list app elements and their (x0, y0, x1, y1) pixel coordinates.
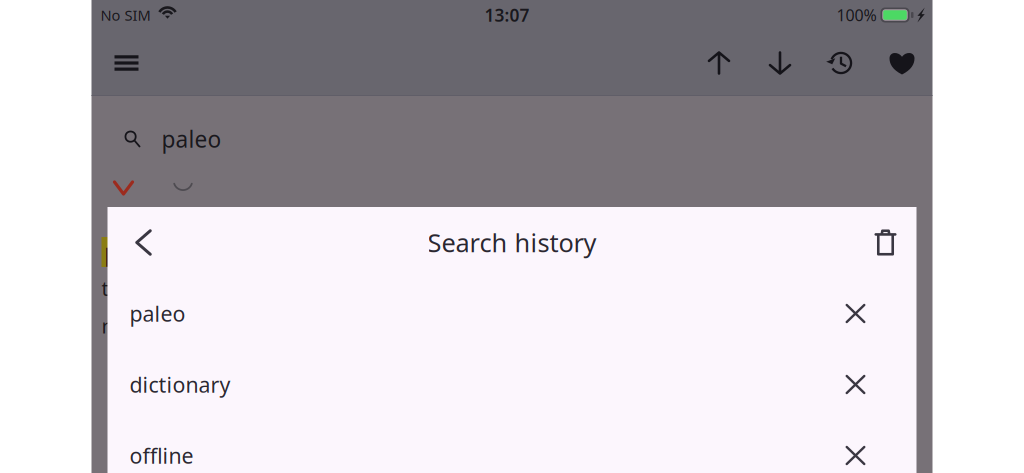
button[interactable]: Next match (749, 30, 810, 96)
staticText: 100% (836, 4, 876, 26)
staticText: Search history (427, 226, 596, 259)
button[interactable]: Menu (96, 30, 156, 96)
staticText: paleo-, palae- (104, 237, 256, 267)
button[interactable]: Clear history (858, 207, 912, 277)
button[interactable]: offline (107, 420, 916, 473)
staticText: dictionary (129, 370, 230, 399)
button[interactable]: dictionary (107, 349, 916, 420)
staticText: 13:07 (484, 3, 529, 26)
staticText: No SIM (100, 5, 150, 25)
staticText: the prefix paleo- comes from Greek (101, 275, 431, 302)
staticText: noun plural -s (101, 313, 238, 339)
staticText: offline (129, 441, 193, 470)
button[interactable]: History (810, 30, 871, 96)
staticText: paleo (129, 299, 185, 328)
button[interactable]: Back (114, 207, 172, 277)
button[interactable]: Favourites (871, 30, 932, 96)
staticText: paleo (161, 124, 221, 154)
button[interactable]: Previous match (688, 30, 749, 96)
button[interactable]: paleo (107, 278, 916, 349)
